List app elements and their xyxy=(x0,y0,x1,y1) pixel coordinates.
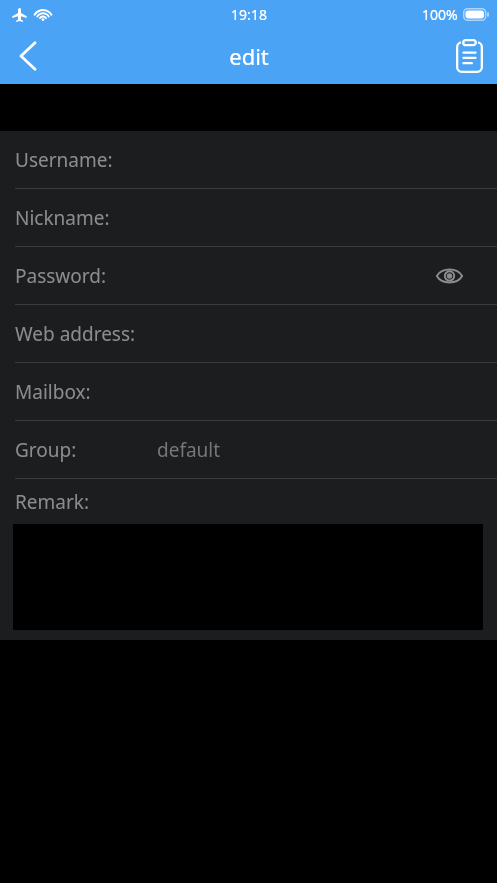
staticText: 19:18 xyxy=(231,5,267,24)
staticText: 100% xyxy=(422,5,458,24)
staticText: Group: xyxy=(15,437,77,463)
staticText: Web address: xyxy=(15,321,136,347)
button[interactable]: Remark: xyxy=(0,479,497,524)
staticText: Remark: xyxy=(15,489,90,515)
staticText: edit xyxy=(229,41,269,71)
button[interactable]: Group: xyxy=(0,421,497,478)
button[interactable]: Back xyxy=(0,28,56,84)
button[interactable]: Username: xyxy=(0,131,497,188)
button[interactable]: Password: xyxy=(0,247,497,304)
button[interactable]: Nickname: xyxy=(0,189,497,246)
staticText: Username: xyxy=(15,147,113,173)
button[interactable]: Mailbox: xyxy=(0,363,497,420)
button[interactable]: Notes xyxy=(441,28,497,84)
staticText: Password: xyxy=(15,263,107,289)
staticText: default xyxy=(157,437,221,463)
button[interactable]: Show password xyxy=(429,256,469,296)
staticText: Nickname: xyxy=(15,205,110,231)
staticText: Mailbox: xyxy=(15,379,91,405)
button[interactable]: Web address: xyxy=(0,305,497,362)
